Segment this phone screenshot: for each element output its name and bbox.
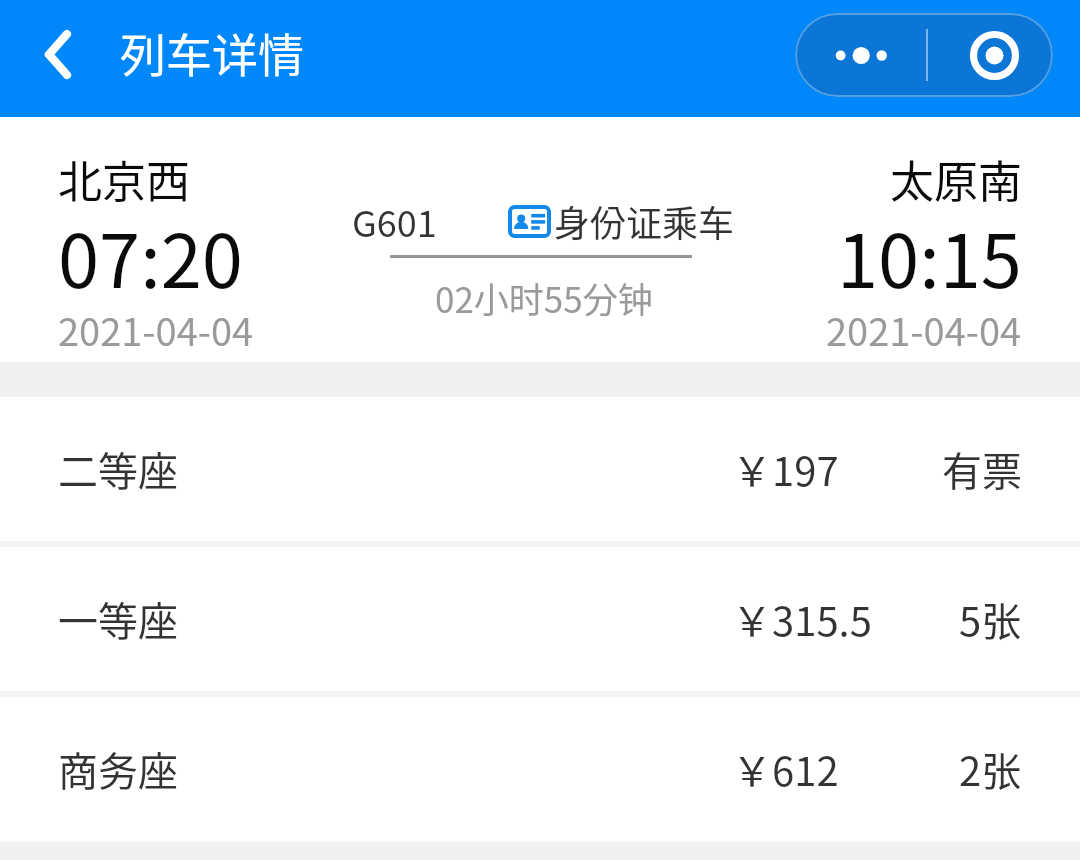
staticText: 5张 [959,590,1022,648]
button[interactable]: More options [795,13,926,97]
staticText: 北京西 [58,147,190,211]
button[interactable]: 二等座 [0,397,1080,541]
button[interactable]: Close [927,13,1053,97]
staticText: 二等座 [58,440,178,498]
button[interactable]: Back [17,13,99,95]
staticText: 2021-04-04 [58,302,254,357]
button[interactable]: 一等座 [0,547,1080,691]
staticText: 一等座 [58,590,178,648]
staticText: 列车详情 [120,19,304,86]
staticText: 2021-04-04 [826,302,1022,357]
staticText: 10:15 [837,202,1022,309]
staticText: 2张 [959,740,1022,798]
staticText: 太原南 [890,147,1022,211]
button[interactable]: 商务座 [0,697,1080,841]
staticText: 02小时55分钟 [435,272,653,323]
staticText: 07:20 [58,202,243,309]
staticText: 身份证乘车 [554,195,735,247]
staticText: 有票 [942,440,1022,498]
staticText: ￥315.5 [732,590,872,648]
staticText: 商务座 [58,740,178,798]
staticText: ￥612 [732,740,839,798]
staticText: G601 [352,195,437,247]
staticText: ￥197 [732,440,839,498]
